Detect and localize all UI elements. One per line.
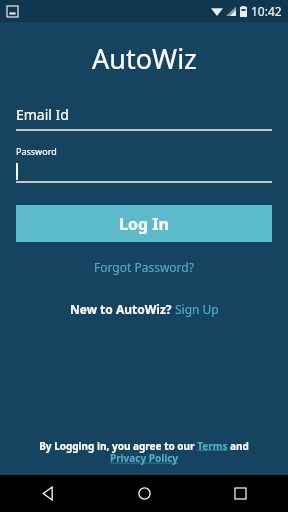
button[interactable]: Log In bbox=[16, 205, 272, 242]
button[interactable]: Forgot Password? bbox=[86, 257, 202, 277]
button[interactable]: Home bbox=[96, 475, 192, 512]
staticText: Password bbox=[16, 145, 57, 157]
staticText: 10:42 bbox=[251, 3, 282, 19]
staticText: Forgot Password? bbox=[94, 259, 194, 275]
button[interactable]: Back bbox=[0, 475, 96, 512]
staticText: AutoWiz bbox=[92, 40, 197, 77]
button[interactable]: Sign Up bbox=[175, 299, 219, 319]
button[interactable]: Password bbox=[16, 145, 272, 183]
staticText: New to AutoWiz? bbox=[70, 301, 175, 317]
button[interactable]: Email Id bbox=[16, 105, 272, 131]
staticText: Sign Up bbox=[175, 301, 219, 317]
staticText: Email Id bbox=[16, 105, 69, 124]
button[interactable]: Recent apps bbox=[192, 475, 288, 512]
staticText: By Logging in, you agree to our Terms an… bbox=[20, 439, 268, 465]
staticText: Log In bbox=[119, 213, 169, 235]
button[interactable]: By Logging in, you agree to our Terms an… bbox=[20, 439, 268, 475]
